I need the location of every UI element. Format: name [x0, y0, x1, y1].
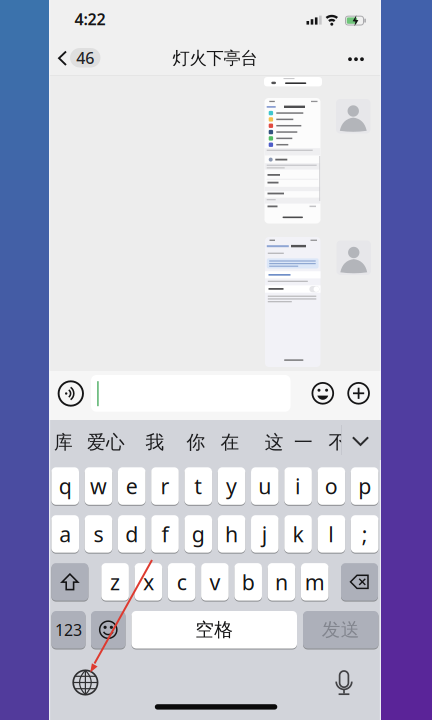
button[interactable]: p — [351, 467, 378, 505]
staticText: e — [126, 472, 138, 500]
staticText: 在 — [220, 431, 239, 454]
staticText: p — [358, 472, 371, 500]
button[interactable]: w — [85, 467, 112, 505]
button[interactable]: Next keyboard — [71, 668, 99, 696]
staticText: s — [93, 520, 103, 548]
button[interactable]: Dictation — [333, 669, 355, 697]
button[interactable]: 这 — [265, 431, 284, 454]
button[interactable]: x — [135, 563, 162, 601]
staticText: 一 — [294, 431, 313, 454]
button[interactable]: a — [51, 515, 79, 553]
button[interactable]: g — [184, 515, 212, 553]
staticText: o — [325, 472, 338, 500]
button[interactable]: ; — [351, 515, 378, 553]
staticText: j — [262, 520, 268, 548]
button[interactable]: n — [268, 563, 295, 601]
staticText: l — [328, 520, 334, 548]
button[interactable]: Image message — [264, 77, 322, 86]
staticText: f — [161, 520, 168, 548]
staticText: h — [225, 520, 238, 548]
staticText: z — [110, 568, 120, 596]
staticText: v — [209, 568, 220, 596]
button[interactable]: u — [251, 467, 279, 505]
button[interactable]: 发送 — [303, 610, 378, 649]
button[interactable]: c — [168, 563, 195, 601]
button[interactable]: Screenshot message — [265, 237, 320, 367]
staticText: 你 — [186, 431, 205, 454]
staticText: r — [160, 472, 169, 500]
button[interactable]: 库 — [54, 431, 73, 454]
staticText: a — [59, 520, 71, 548]
staticText: 4:22 — [74, 8, 105, 30]
button[interactable]: f — [151, 515, 179, 553]
button[interactable]: Expand candidates — [350, 434, 370, 448]
button[interactable]: 我 — [145, 431, 164, 454]
staticText: g — [192, 520, 205, 548]
staticText: x — [143, 568, 154, 596]
staticText: q — [59, 472, 72, 500]
button[interactable]: i — [284, 467, 312, 505]
staticText: 库 — [54, 431, 73, 454]
button[interactable]: b — [234, 563, 262, 601]
staticText: n — [275, 568, 288, 596]
staticText: t — [194, 472, 202, 500]
staticText: i — [295, 472, 301, 500]
button[interactable]: Screenshot message — [264, 98, 320, 223]
button[interactable]: s — [85, 515, 112, 553]
button[interactable]: z — [101, 563, 129, 601]
staticText: y — [226, 472, 237, 500]
staticText: ; — [362, 520, 368, 548]
staticText: 不 — [328, 431, 347, 454]
button[interactable]: 在 — [220, 431, 239, 454]
staticText: 爱心 — [87, 431, 125, 454]
button[interactable]: 不 — [328, 431, 347, 454]
button[interactable]: 空格 — [131, 610, 297, 649]
button[interactable]: Emoji keyboard — [91, 610, 125, 649]
staticText: 123 — [55, 619, 82, 640]
button[interactable]: h — [218, 515, 245, 553]
button[interactable]: 123 — [51, 610, 85, 649]
button[interactable]: d — [118, 515, 145, 553]
staticText: 灯火下亭台 — [172, 48, 257, 69]
button[interactable]: m — [301, 563, 328, 601]
button[interactable]: Contact avatar — [336, 99, 370, 133]
button[interactable]: Emoji — [311, 381, 335, 405]
button[interactable]: Delete — [341, 563, 378, 601]
button[interactable]: e — [118, 467, 145, 505]
staticText: c — [177, 568, 187, 596]
button[interactable]: More functions — [347, 381, 371, 405]
button[interactable]: y — [218, 467, 245, 505]
button[interactable]: Message input — [91, 375, 290, 412]
staticText: d — [125, 520, 138, 548]
button[interactable]: l — [318, 515, 345, 553]
button[interactable]: o — [318, 467, 345, 505]
staticText: 空格 — [195, 618, 233, 641]
button[interactable]: 爱心 — [87, 431, 125, 454]
button[interactable]: j — [251, 515, 279, 553]
button[interactable]: More — [341, 47, 371, 71]
button[interactable]: Shift — [51, 563, 88, 601]
button[interactable]: Contact avatar — [336, 240, 371, 275]
button[interactable]: q — [51, 467, 79, 505]
button[interactable]: r — [151, 467, 179, 505]
button[interactable]: Back — [54, 44, 104, 72]
staticText: 这 — [265, 431, 284, 454]
staticText: 46 — [76, 47, 94, 68]
staticText: 发送 — [322, 618, 360, 641]
button[interactable]: k — [284, 515, 312, 553]
button[interactable]: t — [184, 467, 212, 505]
staticText: k — [293, 520, 304, 548]
staticText: m — [305, 568, 325, 596]
button[interactable]: Voice message — [58, 380, 84, 406]
staticText: 我 — [145, 431, 164, 454]
button[interactable]: 你 — [186, 431, 205, 454]
staticText: w — [90, 472, 107, 500]
button[interactable]: 一 — [294, 431, 313, 454]
staticText: u — [258, 472, 271, 500]
button[interactable]: v — [201, 563, 229, 601]
staticText: b — [242, 568, 255, 596]
